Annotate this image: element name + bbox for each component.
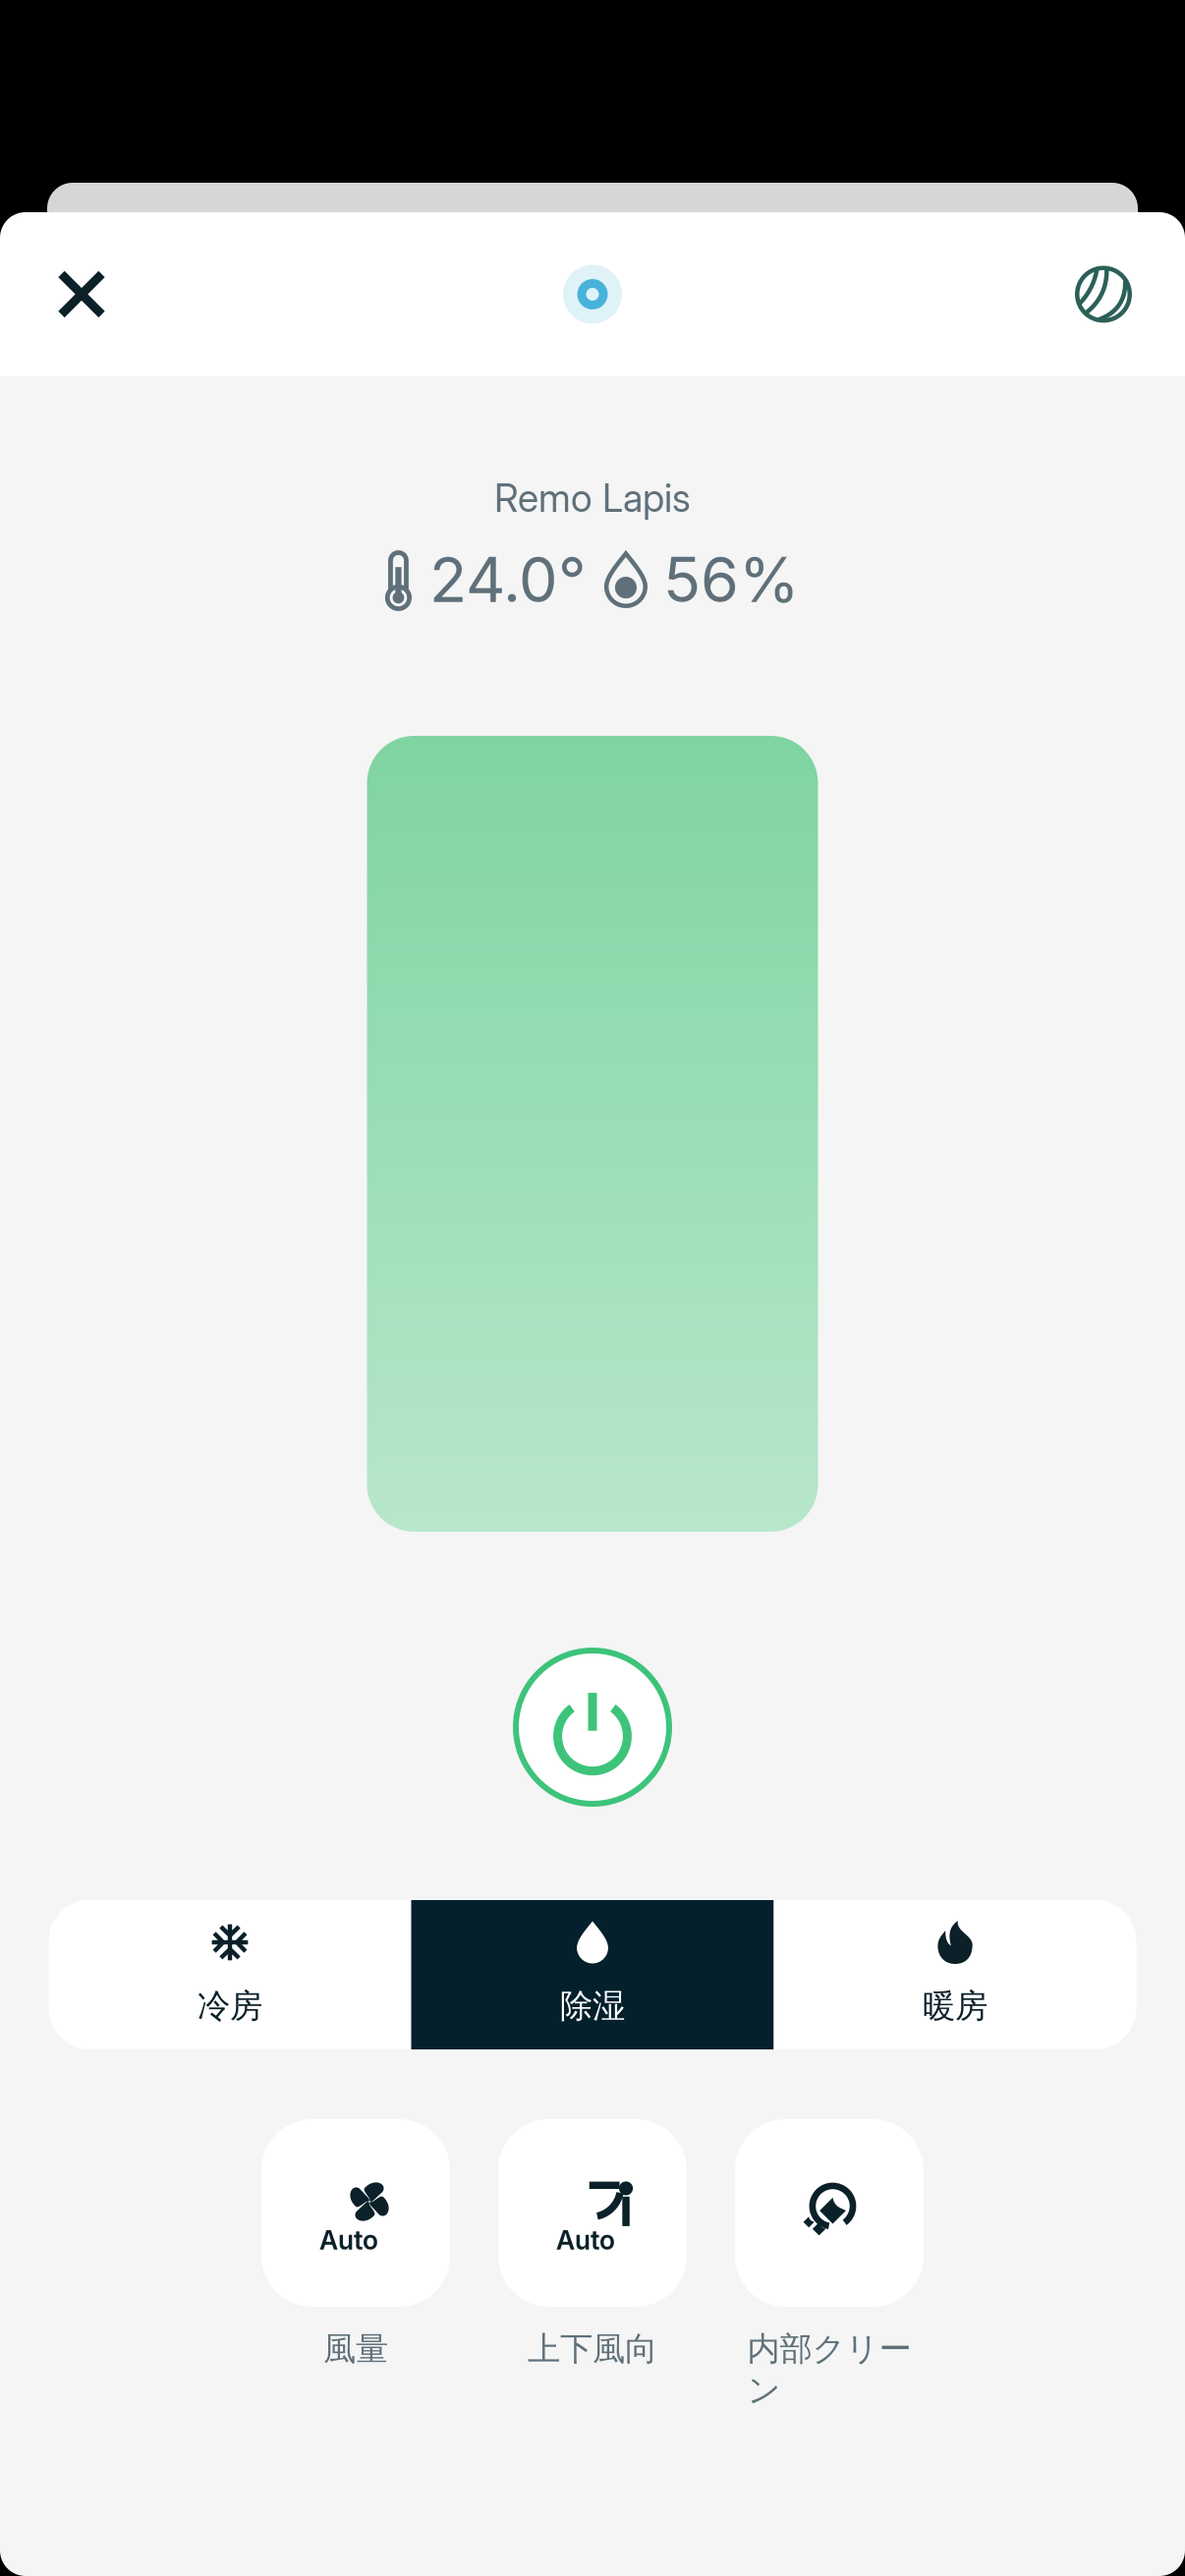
- staticText: Auto: [319, 2224, 378, 2256]
- staticText: 暖房: [923, 1986, 987, 2027]
- button[interactable]: Close: [18, 230, 145, 358]
- button[interactable]: Power: [508, 1643, 677, 1812]
- button[interactable]: 暖房: [774, 1900, 1136, 2049]
- staticText: 冷房: [197, 1986, 262, 2027]
- button[interactable]: 除湿: [411, 1900, 774, 2049]
- staticText: 24.0°: [429, 542, 587, 617]
- staticText: Remo Lapis: [494, 475, 691, 521]
- staticText: 内部クリーン: [747, 2328, 911, 2411]
- button[interactable]: Appliance detail: [1040, 230, 1167, 358]
- staticText: 風量: [323, 2328, 388, 2370]
- button[interactable]: Auto: [261, 2119, 450, 2307]
- staticText: 56%: [663, 542, 800, 617]
- staticText: Auto: [556, 2224, 615, 2256]
- button[interactable]: 冷房: [49, 1900, 411, 2049]
- staticText: 除湿: [560, 1986, 625, 2027]
- button[interactable]: Connection status: [529, 230, 656, 358]
- button[interactable]: Auto: [498, 2119, 687, 2307]
- button[interactable]: [735, 2119, 924, 2307]
- staticText: 上下風向: [528, 2328, 657, 2370]
